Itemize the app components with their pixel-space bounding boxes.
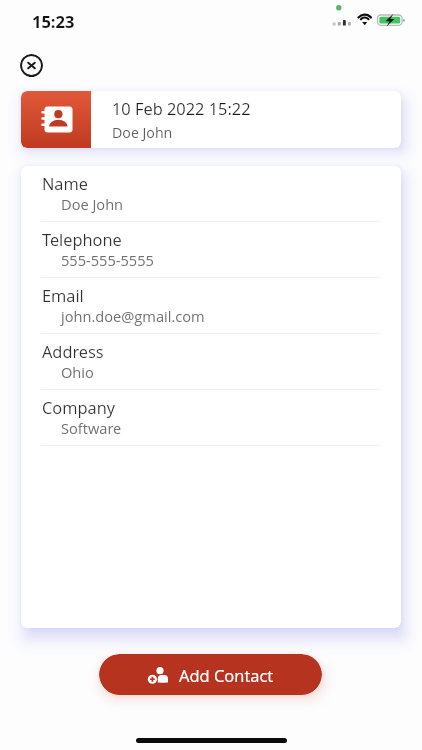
button[interactable]: Telephone [21, 222, 401, 278]
staticText: Ohio [61, 362, 94, 382]
staticText: Add Contact [179, 664, 274, 686]
button[interactable]: Company [21, 390, 401, 446]
button[interactable]: Name [21, 166, 401, 222]
staticText: john.doe@gmail.com [61, 306, 205, 326]
staticText: Address [42, 340, 104, 362]
staticText: Telephone [42, 228, 122, 250]
staticText: Name [42, 172, 88, 194]
button[interactable]: Address [21, 334, 401, 390]
button[interactable]: Email [21, 278, 401, 334]
staticText: 15:23 [32, 10, 75, 32]
staticText: Company [42, 396, 115, 418]
staticText: 10 Feb 2022 15:22 [112, 97, 251, 119]
staticText: Doe John [112, 123, 173, 142]
button[interactable]: Add Contact [99, 654, 322, 695]
staticText: Email [42, 284, 84, 306]
staticText: Software [61, 418, 122, 438]
staticText: Doe John [61, 194, 124, 214]
button[interactable]: Close [20, 54, 43, 77]
staticText: 555-555-5555 [61, 250, 154, 270]
button[interactable]: 10 Feb 2022 15:22 [21, 91, 401, 148]
